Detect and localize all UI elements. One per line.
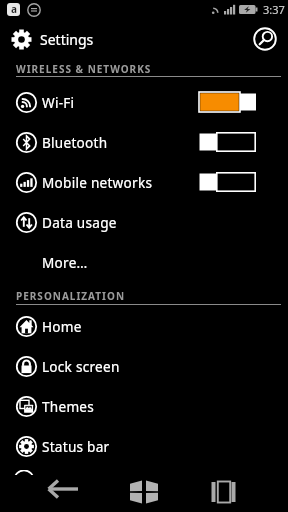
staticText: Mobile networks: [42, 173, 153, 192]
button[interactable]: [199, 132, 256, 152]
button[interactable]: Status bar: [0, 426, 288, 466]
staticText: Bluetooth: [42, 133, 108, 152]
button[interactable]: [248, 22, 282, 56]
button[interactable]: [40, 475, 86, 512]
staticText: Settings: [40, 30, 94, 49]
staticText: WIRELESS & NETWORKS: [16, 62, 152, 76]
button[interactable]: Wi-Fi: [0, 82, 288, 122]
staticText: PERSONALIZATION: [16, 289, 126, 303]
button[interactable]: [200, 475, 246, 512]
staticText: Themes: [42, 397, 95, 416]
staticText: Home: [42, 317, 82, 336]
button[interactable]: Mobile networks: [0, 162, 288, 202]
button[interactable]: Bluetooth: [0, 122, 288, 162]
button[interactable]: More…: [0, 242, 288, 282]
button[interactable]: [121, 475, 167, 512]
staticText: More…: [42, 253, 88, 272]
button[interactable]: Themes: [0, 386, 288, 426]
button[interactable]: [199, 92, 256, 112]
staticText: a: [11, 3, 17, 15]
staticText: Status bar: [42, 437, 110, 456]
staticText: 3:37: [263, 2, 285, 17]
button[interactable]: Lock screen: [0, 346, 288, 386]
button[interactable]: Data usage: [0, 202, 288, 242]
staticText: Wi-Fi: [42, 93, 75, 112]
staticText: Data usage: [42, 213, 117, 232]
button[interactable]: [199, 172, 256, 192]
staticText: Lock screen: [42, 357, 120, 376]
button[interactable]: Home: [0, 306, 288, 346]
